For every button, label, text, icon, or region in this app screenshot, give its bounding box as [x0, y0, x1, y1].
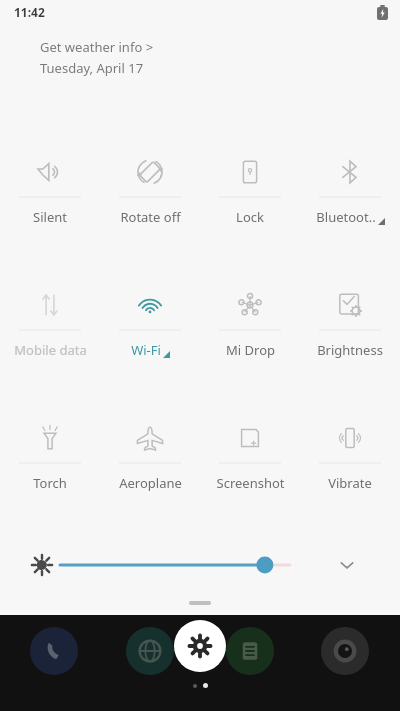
button[interactable]: Screenshot [200, 409, 300, 504]
button[interactable]: Brightness [300, 276, 400, 371]
staticText: Bluetoot.. [316, 208, 376, 226]
button[interactable]: Rotate off [100, 143, 200, 238]
staticText: Wi-Fi [131, 341, 161, 359]
staticText: Tuesday, April 17 [40, 59, 144, 77]
button[interactable]: App [126, 627, 174, 675]
button[interactable]: Lock [200, 143, 300, 238]
staticText: Lock [236, 208, 264, 226]
staticText: Rotate off [120, 208, 181, 226]
button[interactable]: Wi-Fi [100, 276, 200, 371]
button[interactable]: App [226, 627, 274, 675]
button[interactable]: Torch [0, 409, 100, 504]
staticText: Torch [33, 474, 67, 492]
button[interactable]: Mobile data [0, 276, 100, 371]
button[interactable]: Expand [338, 556, 356, 574]
button[interactable]: Mi Drop [200, 276, 300, 371]
button[interactable]: App [30, 627, 78, 675]
button[interactable]: Get weather info > [38, 36, 156, 79]
button[interactable]: Bluetoot.. [300, 143, 400, 238]
staticText: 11:42 [14, 4, 45, 20]
staticText: Get weather info > [40, 38, 154, 56]
button[interactable]: Vibrate [300, 409, 400, 504]
staticText: Silent [33, 208, 67, 226]
staticText: Mobile data [14, 341, 87, 359]
staticText: Vibrate [328, 474, 372, 492]
button[interactable]: Settings [174, 620, 226, 672]
button[interactable]: Silent [0, 143, 100, 238]
button[interactable]: Aeroplane [100, 409, 200, 504]
staticText: Aeroplane [119, 474, 182, 492]
button[interactable]: Brightness slider [60, 553, 335, 577]
button[interactable]: App [321, 627, 369, 675]
staticText: Screenshot [216, 474, 285, 492]
staticText: Brightness [317, 341, 383, 359]
staticText: Mi Drop [226, 341, 275, 359]
